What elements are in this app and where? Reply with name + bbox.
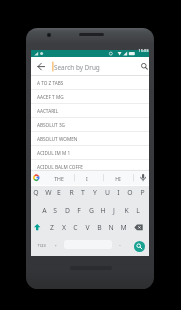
button[interactable]: G xyxy=(82,203,100,217)
button[interactable]: AACTARIL xyxy=(31,104,149,118)
staticText: L xyxy=(136,206,140,215)
button[interactable]: Q xyxy=(27,185,45,199)
staticText: D xyxy=(65,206,70,215)
button[interactable]: S xyxy=(46,203,64,217)
staticText: V xyxy=(85,223,90,232)
staticText: . xyxy=(119,240,121,247)
staticText: Z xyxy=(50,223,54,232)
staticText: T xyxy=(81,188,85,197)
button[interactable]: I xyxy=(109,185,127,199)
button[interactable]: X xyxy=(55,220,73,234)
button[interactable] xyxy=(134,241,145,252)
button[interactable]: T xyxy=(74,185,92,199)
button[interactable]: E xyxy=(50,185,68,199)
button[interactable]: Z xyxy=(43,220,61,234)
button[interactable]: ACIDUL BALM COFFE xyxy=(31,160,149,174)
staticText: I xyxy=(86,175,88,182)
button[interactable]: B xyxy=(90,220,108,234)
button[interactable]: Search by Drug xyxy=(31,57,149,76)
staticText: AACEF T MG xyxy=(37,94,64,100)
button[interactable]: HI xyxy=(109,171,127,185)
staticText: N xyxy=(108,223,114,232)
button[interactable]: THE xyxy=(50,171,68,185)
button[interactable]: N xyxy=(102,220,120,234)
staticText: Search by Drug xyxy=(54,63,100,72)
button[interactable]: ABSOLUT 3G xyxy=(31,118,149,132)
button[interactable]: H xyxy=(94,203,112,217)
staticText: E xyxy=(57,188,61,197)
staticText: A TO Z TABS xyxy=(37,80,64,86)
staticText: O xyxy=(127,188,133,197)
button[interactable]: U xyxy=(98,185,116,199)
button[interactable]: C xyxy=(66,220,84,234)
staticText: K xyxy=(124,206,129,215)
button[interactable]: , xyxy=(47,236,65,250)
staticText: P xyxy=(140,188,145,197)
button[interactable]: R xyxy=(62,185,80,199)
staticText: ACIDUL IM M 1 xyxy=(37,150,71,156)
button[interactable]: P xyxy=(133,185,151,199)
button[interactable]: Y xyxy=(86,185,104,199)
staticText: HI xyxy=(115,175,121,182)
staticText: ABSOLUT 3G xyxy=(37,122,66,128)
staticText: Y xyxy=(93,188,97,197)
button[interactable]: M xyxy=(114,220,132,234)
button[interactable]: ABSOLUT WOMEN xyxy=(31,132,149,146)
button[interactable]: ACIDUL IM M 1 xyxy=(31,146,149,160)
staticText: , xyxy=(55,240,57,247)
staticText: G xyxy=(89,206,94,215)
staticText: W xyxy=(45,188,52,197)
button[interactable]: O xyxy=(121,185,139,199)
button[interactable]: I xyxy=(78,171,96,185)
button[interactable]: ?123 xyxy=(32,238,50,252)
staticText: X xyxy=(62,223,66,232)
staticText: ABSOLUT WOMEN xyxy=(37,136,78,142)
button[interactable]: AACEF T MG xyxy=(31,90,149,104)
button[interactable]: K xyxy=(117,203,135,217)
button[interactable]: A xyxy=(35,203,53,217)
staticText: U xyxy=(105,188,110,197)
staticText: B xyxy=(97,223,102,232)
staticText: THE xyxy=(54,175,64,182)
staticText: H xyxy=(100,206,106,215)
button[interactable]: J xyxy=(105,203,123,217)
staticText: J xyxy=(113,206,115,215)
button[interactable]: F xyxy=(70,203,88,217)
button[interactable]: V xyxy=(78,220,96,234)
staticText: F xyxy=(77,206,81,215)
staticText: C xyxy=(73,223,78,232)
staticText: AACTARIL xyxy=(37,108,59,114)
staticText: R xyxy=(69,188,74,197)
staticText: I xyxy=(117,188,120,197)
staticText: S xyxy=(53,206,57,215)
button[interactable]: A TO Z TABS xyxy=(31,76,149,90)
staticText: ?123 xyxy=(37,243,46,248)
staticText: 15:03 xyxy=(138,48,149,53)
button[interactable]: D xyxy=(58,203,76,217)
staticText: ACIDUL BALM COFFE xyxy=(37,164,83,170)
staticText: Q xyxy=(33,188,39,197)
staticText: A xyxy=(42,206,47,215)
staticText: M xyxy=(120,223,127,232)
button[interactable]: L xyxy=(129,203,147,217)
button[interactable]: W xyxy=(39,185,57,199)
